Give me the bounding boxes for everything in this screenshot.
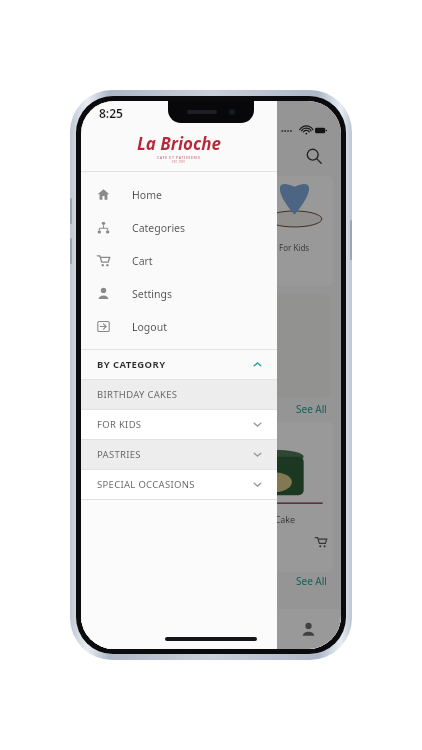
- staticText: EST. 1991: [172, 160, 186, 164]
- staticText: BIRTHDAY CAKE: [170, 371, 253, 386]
- staticText: Categories: [132, 221, 186, 235]
- button[interactable]: FOR KIDS: [81, 410, 277, 439]
- button[interactable]: La Brioche: [91, 294, 331, 398]
- button[interactable]: Cart: [81, 244, 277, 277]
- staticText: Logout: [132, 320, 167, 334]
- button[interactable]: Home: [81, 178, 277, 211]
- staticText: PASTRIES: [97, 448, 141, 461]
- button[interactable]: Camouflage Cake: [215, 422, 333, 572]
- staticText: BIRTHDAY CAKES: [165, 350, 258, 365]
- staticText: Settings: [132, 287, 172, 301]
- staticText: For Kids: [279, 242, 310, 253]
- button[interactable]: Cart: [211, 609, 276, 649]
- button[interactable]: PASTRIES: [81, 440, 277, 469]
- button[interactable]: Special Occasions: [173, 176, 250, 286]
- button[interactable]: Categories: [81, 211, 277, 244]
- button[interactable]: Categories: [146, 609, 211, 649]
- button[interactable]: For Kids: [256, 176, 333, 286]
- staticText: Cart: [132, 254, 153, 268]
- staticText: BIRTHDAY CAKES: [97, 388, 178, 401]
- button[interactable]: BIRTHDAY CAKES: [81, 380, 277, 409]
- staticText: La Brioche: [137, 132, 221, 155]
- button[interactable]: Logout: [81, 310, 277, 343]
- staticText: Camouflage Cake: [221, 513, 296, 525]
- staticText: Famous: [187, 332, 236, 350]
- button[interactable]: BY CATEGORY: [81, 350, 277, 379]
- staticText: CAFE ET PATISSERIE: [157, 155, 201, 160]
- button[interactable]: SPECIAL OCCASIONS: [81, 470, 277, 499]
- staticText: See All: [296, 402, 327, 416]
- button[interactable]: Red Velvet: [89, 422, 207, 572]
- button[interactable]: Pastries: [89, 176, 167, 286]
- staticText: FOR KIDS: [97, 418, 142, 431]
- button[interactable]: Profile: [276, 609, 341, 649]
- button[interactable]: Search: [299, 141, 329, 171]
- staticText: SPECIAL OCCASIONS: [97, 478, 195, 491]
- button[interactable]: Home: [81, 609, 146, 649]
- staticText: See All: [296, 574, 327, 588]
- staticText: BY CATEGORY: [97, 358, 166, 371]
- staticText: 8:25: [99, 105, 123, 121]
- staticText: Home: [132, 188, 162, 202]
- button[interactable]: Settings: [81, 277, 277, 310]
